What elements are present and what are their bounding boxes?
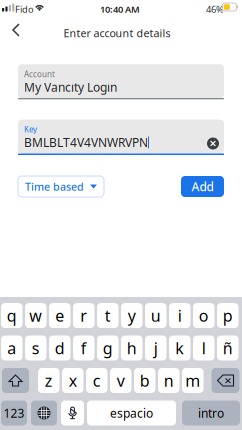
button[interactable]: d xyxy=(49,335,70,360)
staticText: t xyxy=(105,305,111,326)
button[interactable]: Back xyxy=(1,15,31,45)
button[interactable]: ñ xyxy=(217,335,238,360)
staticText: Enter account details xyxy=(63,26,170,40)
button[interactable]: q xyxy=(1,303,22,328)
staticText: d xyxy=(55,337,65,359)
button[interactable]: w xyxy=(25,303,46,328)
staticText: i xyxy=(178,305,182,326)
button[interactable]: Add xyxy=(181,176,224,197)
button[interactable]: espacio xyxy=(87,400,176,425)
staticText: f xyxy=(81,337,87,359)
button[interactable]: p xyxy=(217,303,238,328)
staticText: Fido xyxy=(15,3,34,15)
staticText: g xyxy=(103,337,113,359)
staticText: w xyxy=(29,305,42,326)
button[interactable]: Delete xyxy=(211,368,239,393)
button[interactable]: Clear text xyxy=(207,137,219,149)
button[interactable]: Next keyboard xyxy=(31,400,57,425)
button[interactable]: y xyxy=(121,303,142,328)
staticText: s xyxy=(32,337,40,359)
button[interactable]: 123 xyxy=(1,400,27,425)
staticText: n xyxy=(164,370,174,391)
staticText: k xyxy=(175,337,184,359)
button[interactable]: k xyxy=(169,335,190,360)
staticText: ñ xyxy=(223,337,233,359)
button[interactable]: g xyxy=(97,335,118,360)
staticText: BMLBLT4V4VNWRVPN xyxy=(24,134,148,150)
button[interactable]: c xyxy=(86,368,107,393)
staticText: b xyxy=(140,370,150,391)
staticText: r xyxy=(80,305,87,326)
staticText: Add xyxy=(191,178,213,194)
button[interactable]: t xyxy=(97,303,118,328)
button[interactable]: Shift xyxy=(2,368,29,393)
button[interactable]: Dictation xyxy=(61,400,84,425)
staticText: z xyxy=(45,370,53,391)
staticText: e xyxy=(55,305,64,326)
staticText: Key xyxy=(24,124,37,135)
staticText: u xyxy=(151,305,161,326)
staticText: v xyxy=(117,370,125,391)
staticText: l xyxy=(202,337,206,359)
button[interactable]: Time based xyxy=(18,176,104,197)
button[interactable]: a xyxy=(1,335,22,360)
button[interactable]: intro xyxy=(182,400,240,425)
button[interactable]: x xyxy=(62,368,83,393)
staticText: Account xyxy=(24,69,55,79)
staticText: 10:40 AM xyxy=(100,3,140,15)
button[interactable]: f xyxy=(73,335,94,360)
button[interactable]: u xyxy=(145,303,166,328)
staticText: y xyxy=(128,305,136,326)
staticText: My Vancity Login xyxy=(24,79,117,95)
staticText: 46% xyxy=(206,3,224,15)
button[interactable]: b xyxy=(134,368,155,393)
staticText: j xyxy=(154,337,158,359)
staticText: espacio xyxy=(110,405,153,421)
staticText: q xyxy=(7,305,17,326)
button[interactable]: r xyxy=(73,303,94,328)
staticText: c xyxy=(93,370,101,391)
staticText: a xyxy=(7,337,16,359)
button[interactable]: i xyxy=(169,303,190,328)
button[interactable]: n xyxy=(158,368,179,393)
button[interactable]: z xyxy=(38,368,59,393)
button[interactable]: h xyxy=(121,335,142,360)
button[interactable]: o xyxy=(193,303,214,328)
button[interactable]: e xyxy=(49,303,70,328)
button[interactable]: s xyxy=(25,335,46,360)
button[interactable]: j xyxy=(145,335,166,360)
staticText: 123 xyxy=(3,405,24,421)
staticText: o xyxy=(199,305,209,326)
staticText: intro xyxy=(198,405,224,421)
button[interactable]: m xyxy=(182,368,203,393)
staticText: x xyxy=(69,370,77,391)
staticText: h xyxy=(127,337,137,359)
button[interactable]: v xyxy=(110,368,131,393)
staticText: m xyxy=(185,370,200,391)
staticText: Time based xyxy=(25,179,84,194)
staticText: p xyxy=(223,305,233,326)
button[interactable]: l xyxy=(193,335,214,360)
